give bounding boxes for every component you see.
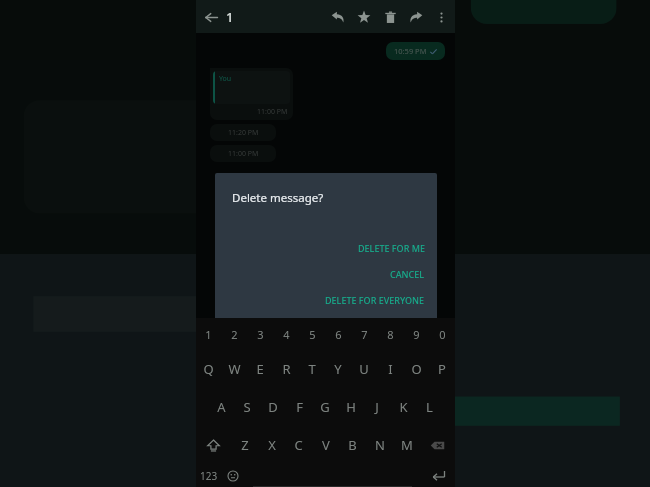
button[interactable]: Backspace: [420, 426, 455, 464]
button[interactable]: R: [273, 350, 299, 388]
button[interactable]: Delete: [377, 4, 403, 30]
staticText: I: [388, 360, 393, 378]
button[interactable]: Enter: [421, 464, 455, 487]
button[interactable]: U: [351, 350, 377, 388]
button[interactable]: 6: [325, 318, 351, 350]
staticText: Delete message?: [232, 190, 324, 206]
staticText: 3: [257, 327, 264, 342]
staticText: DELETE FOR EVERYONE: [325, 294, 425, 306]
button[interactable]: K: [390, 388, 416, 426]
button[interactable]: H: [338, 388, 364, 426]
button[interactable]: DELETE FOR EVERYONE: [313, 292, 437, 308]
staticText: 11:20 PM: [228, 128, 259, 138]
staticText: E: [256, 360, 264, 378]
button[interactable]: 5: [299, 318, 325, 350]
staticText: X: [268, 436, 276, 454]
staticText: F: [296, 398, 303, 416]
button[interactable]: 2: [221, 318, 247, 350]
button[interactable]: B: [339, 426, 366, 464]
button[interactable]: CANCEL: [378, 266, 437, 282]
button[interactable]: Z: [231, 426, 258, 464]
button[interactable]: Star: [351, 4, 377, 30]
staticText: 10:59 PM: [394, 46, 427, 56]
staticText: 6: [335, 327, 342, 342]
staticText: G: [320, 398, 330, 416]
staticText: O: [411, 360, 422, 378]
button[interactable]: E: [247, 350, 273, 388]
button[interactable]: G: [312, 388, 338, 426]
staticText: 1: [205, 327, 212, 342]
button[interactable]: N: [366, 426, 393, 464]
button[interactable]: W: [221, 350, 247, 388]
button[interactable]: J: [364, 388, 390, 426]
staticText: 11:00 PM: [257, 107, 288, 117]
button[interactable]: Y: [325, 350, 351, 388]
staticText: L: [426, 398, 433, 416]
button[interactable]: Reply: [325, 4, 351, 30]
button[interactable]: S: [234, 388, 260, 426]
button[interactable]: Emoji: [222, 464, 244, 487]
button[interactable]: 3: [247, 318, 273, 350]
staticText: C: [294, 436, 303, 454]
staticText: D: [268, 398, 278, 416]
staticText: J: [375, 398, 379, 416]
button[interactable]: C: [285, 426, 312, 464]
button[interactable]: A: [209, 388, 234, 426]
button[interactable]: O: [403, 350, 429, 388]
button[interactable]: P: [429, 350, 455, 388]
button[interactable]: DELETE FOR ME: [346, 240, 437, 256]
staticText: K: [399, 398, 408, 416]
staticText: P: [438, 360, 446, 378]
staticText: You: [219, 74, 232, 84]
button[interactable]: T: [299, 350, 325, 388]
button[interactable]: Shift: [196, 426, 231, 464]
button[interactable]: 1: [196, 318, 221, 350]
staticText: 7: [361, 327, 368, 342]
staticText: CANCEL: [390, 268, 425, 280]
staticText: U: [359, 360, 369, 378]
staticText: 0: [439, 327, 446, 342]
staticText: 1: [226, 8, 234, 26]
staticText: 123: [200, 469, 218, 483]
staticText: A: [217, 398, 226, 416]
button[interactable]: Q: [196, 350, 221, 388]
button[interactable]: I: [377, 350, 403, 388]
staticText: W: [228, 360, 241, 378]
button[interactable]: M: [393, 426, 420, 464]
button[interactable]: D: [260, 388, 286, 426]
staticText: H: [346, 398, 356, 416]
button[interactable]: L: [416, 388, 442, 426]
button[interactable]: Back: [196, 2, 226, 32]
staticText: V: [322, 436, 330, 454]
staticText: N: [375, 436, 385, 454]
staticText: 2: [231, 327, 238, 342]
staticText: 9: [413, 327, 420, 342]
button[interactable]: Forward: [403, 4, 429, 30]
staticText: R: [282, 360, 291, 378]
staticText: Y: [334, 360, 342, 378]
button[interactable]: Space: [244, 464, 421, 487]
staticText: T: [308, 360, 316, 378]
staticText: M: [401, 436, 413, 454]
button[interactable]: 4: [273, 318, 299, 350]
button[interactable]: 9: [403, 318, 429, 350]
staticText: 4: [283, 327, 290, 342]
staticText: 5: [309, 327, 316, 342]
button[interactable]: 123: [196, 464, 222, 487]
button[interactable]: V: [312, 426, 339, 464]
staticText: B: [348, 436, 357, 454]
button[interactable]: X: [258, 426, 285, 464]
button[interactable]: More options: [429, 5, 453, 29]
staticText: S: [243, 398, 251, 416]
staticText: Q: [203, 360, 214, 378]
button[interactable]: 8: [377, 318, 403, 350]
staticText: Z: [241, 436, 249, 454]
button[interactable]: 7: [351, 318, 377, 350]
button[interactable]: F: [286, 388, 312, 426]
staticText: DELETE FOR ME: [358, 242, 425, 254]
staticText: 8: [387, 327, 394, 342]
staticText: 11:00 PM: [228, 149, 259, 159]
button[interactable]: 0: [429, 318, 455, 350]
